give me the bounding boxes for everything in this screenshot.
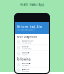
staticText: Dr. James Lee xyxy=(21,69,29,70)
staticText: Cardiology xyxy=(21,65,29,66)
button[interactable]: Heart rate xyxy=(17,45,47,50)
staticText: Welcome back, Alex xyxy=(17,25,42,29)
staticText: Your daily health summary xyxy=(17,29,35,31)
staticText: Health Tracker App xyxy=(19,3,44,6)
staticText: Normal range xyxy=(21,42,31,44)
button[interactable]: Dr. James Lee xyxy=(17,68,47,73)
button[interactable]: Blood pressure xyxy=(17,39,47,45)
staticText: Sleep quality xyxy=(21,52,29,54)
staticText: Blood pressure xyxy=(21,40,33,42)
staticText: Neurology xyxy=(21,71,29,72)
staticText: Heart rate xyxy=(21,46,28,48)
button[interactable]: Dr. Sarah Smith xyxy=(17,62,47,67)
staticText: 7h 20m xyxy=(21,54,26,56)
staticText: 72 bpm resting xyxy=(21,48,31,50)
button[interactable]: Sleep quality xyxy=(17,51,47,56)
staticText: Dr. Sarah Smith xyxy=(21,63,30,64)
staticText: Following xyxy=(17,58,31,61)
staticText: Your Diagnosis xyxy=(17,35,37,38)
